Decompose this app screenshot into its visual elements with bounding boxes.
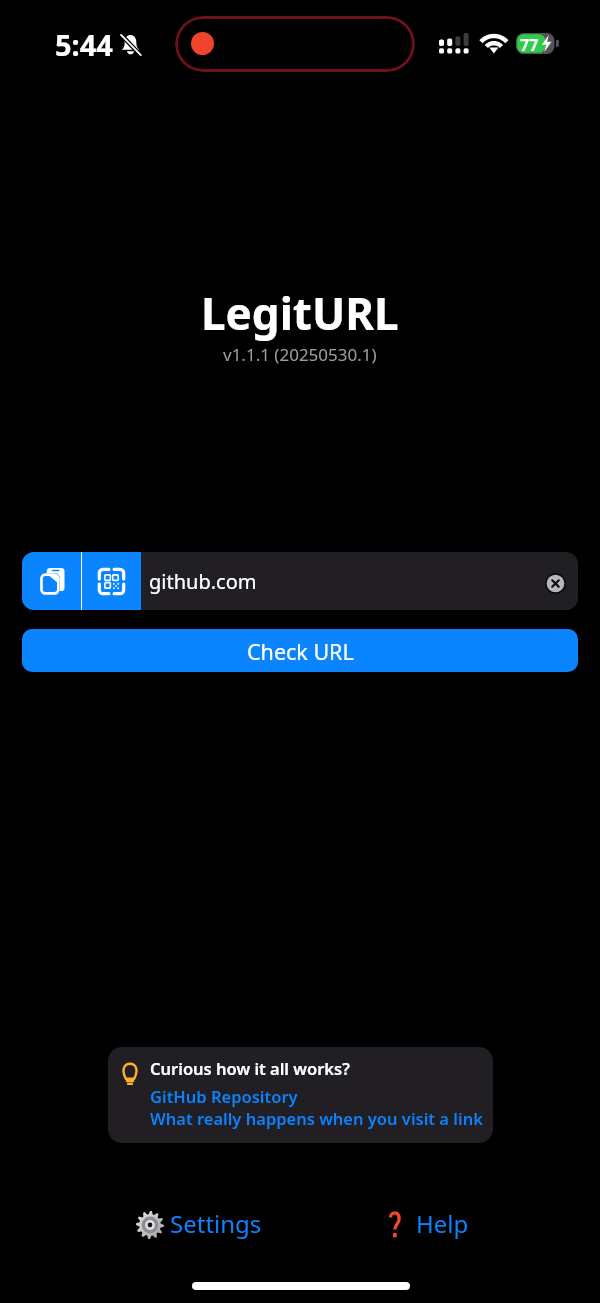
staticText: Settings	[170, 1207, 262, 1240]
staticText: 5:44	[55, 25, 113, 64]
staticText: v1.1.1 (20250530.1)	[223, 343, 377, 366]
button[interactable]: What really happens when you visit a lin…	[150, 1107, 483, 1129]
button[interactable]: github.com	[141, 552, 545, 610]
button[interactable]: Paste from clipboard	[22, 552, 81, 610]
staticText: 77	[520, 34, 539, 55]
staticText: Help	[416, 1207, 469, 1240]
staticText: Check URL	[247, 637, 354, 666]
staticText: Curious how it all works?	[150, 1057, 350, 1079]
staticText: LegitURL	[201, 283, 399, 343]
staticText: github.com	[149, 568, 257, 595]
button[interactable]: Help	[389, 1203, 469, 1244]
button[interactable]: Check URL	[22, 629, 578, 672]
button[interactable]: Settings	[136, 1203, 262, 1244]
button[interactable]: GitHub Repository	[150, 1085, 298, 1107]
button[interactable]: Clear text	[545, 573, 566, 594]
staticText: GitHub Repository	[150, 1085, 298, 1107]
button[interactable]: Scan QR code	[82, 552, 141, 610]
staticText: What really happens when you visit a lin…	[150, 1107, 483, 1129]
